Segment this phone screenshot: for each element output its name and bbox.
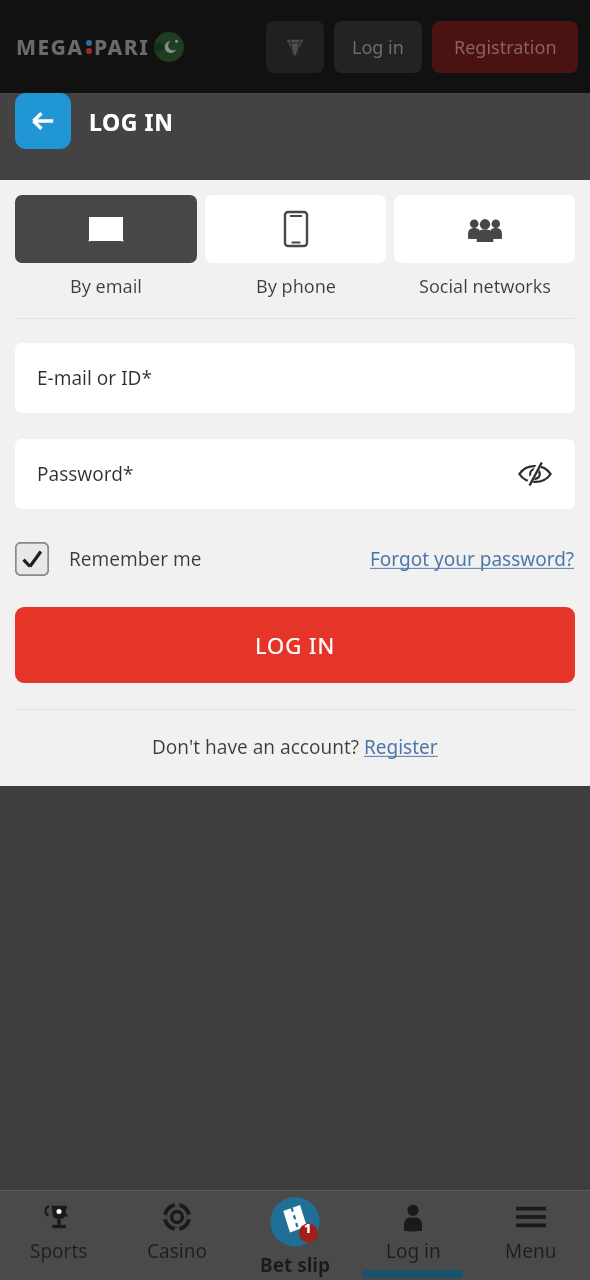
button[interactable]: LOG IN bbox=[15, 607, 575, 683]
staticText: LOG IN bbox=[89, 106, 174, 137]
button[interactable]: By email bbox=[15, 195, 197, 299]
button[interactable]: Casino bbox=[118, 1190, 236, 1280]
button[interactable]: Social networks bbox=[394, 195, 575, 299]
button[interactable]: Log in bbox=[354, 1190, 472, 1280]
staticText: Forgot your password? bbox=[370, 546, 575, 572]
button[interactable]: Promo bbox=[266, 21, 324, 73]
button[interactable]: Back bbox=[15, 93, 71, 149]
button[interactable]: Sports bbox=[0, 1190, 118, 1280]
staticText: Bet slip bbox=[260, 1252, 331, 1278]
staticText: By phone bbox=[256, 274, 336, 299]
button[interactable]: By phone bbox=[205, 195, 386, 299]
staticText: Registration bbox=[454, 35, 557, 60]
staticText: Log in bbox=[386, 1238, 441, 1264]
staticText: 1 bbox=[304, 1219, 312, 1237]
staticText: LOG IN bbox=[255, 630, 336, 660]
staticText: Remember me bbox=[69, 546, 202, 572]
staticText: Register bbox=[364, 734, 438, 760]
staticText: E-mail or ID* bbox=[37, 365, 152, 391]
button[interactable]: 1 bbox=[236, 1190, 354, 1280]
staticText: Casino bbox=[147, 1238, 207, 1264]
button[interactable]: Show password bbox=[515, 454, 555, 494]
button[interactable]: Registration bbox=[432, 21, 578, 73]
button[interactable]: Remember me bbox=[15, 542, 202, 576]
button[interactable]: Password* bbox=[15, 439, 575, 509]
staticText: Sports bbox=[30, 1238, 88, 1264]
staticText: Log in bbox=[352, 35, 404, 60]
staticText: Menu bbox=[505, 1238, 557, 1264]
staticText: By email bbox=[70, 274, 142, 299]
staticText: MEGA bbox=[16, 33, 84, 62]
staticText: Social networks bbox=[419, 274, 551, 299]
staticText: Don't have an account? bbox=[152, 734, 364, 760]
button[interactable]: E-mail or ID* bbox=[15, 343, 575, 413]
button[interactable]: Forgot your password? bbox=[370, 546, 575, 572]
staticText: PARI bbox=[94, 33, 150, 62]
button[interactable]: Log in bbox=[334, 21, 422, 73]
button[interactable]: Register bbox=[364, 734, 438, 760]
staticText: Password* bbox=[37, 461, 134, 487]
button[interactable]: Menu bbox=[472, 1190, 590, 1280]
